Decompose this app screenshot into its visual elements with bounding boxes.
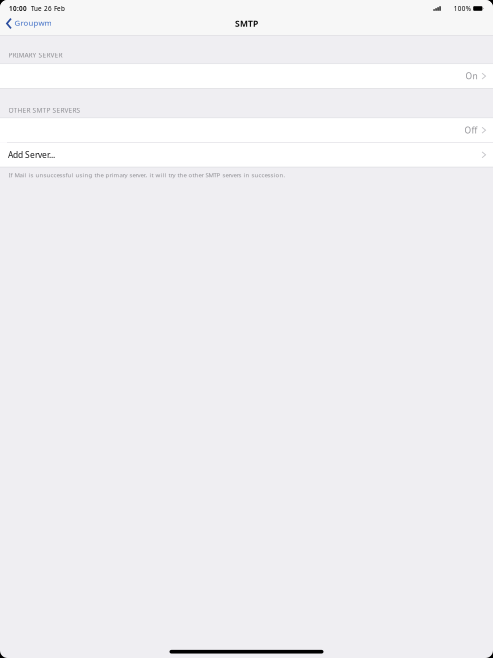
staticText: Add Server... xyxy=(8,149,55,160)
button[interactable]: Groupwm xyxy=(0,14,59,32)
staticText: On xyxy=(466,70,478,82)
button[interactable] xyxy=(0,118,493,142)
button[interactable] xyxy=(0,64,493,88)
staticText: If Mail is unsuccessful using the primar… xyxy=(8,171,285,179)
button[interactable]: Add Server... xyxy=(0,143,493,167)
staticText: 100% xyxy=(454,4,471,13)
staticText: 10:00 xyxy=(9,4,27,13)
staticText: Groupwm xyxy=(14,17,51,28)
staticText: OTHER SMTP SERVERS xyxy=(8,106,80,115)
staticText: PRIMARY SERVER xyxy=(8,51,62,59)
staticText: Off xyxy=(465,124,478,136)
staticText: SMTP xyxy=(235,18,258,29)
staticText: Tue 26 Feb xyxy=(31,4,65,13)
